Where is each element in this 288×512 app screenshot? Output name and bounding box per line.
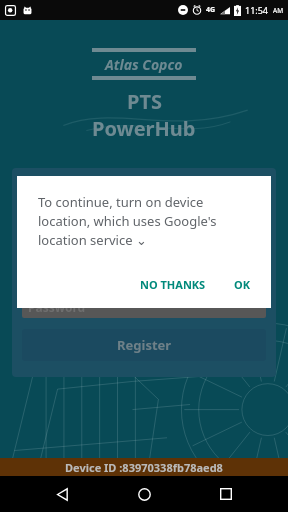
button[interactable]: Back	[42, 476, 82, 512]
staticText: 11:54	[245, 4, 269, 16]
staticText: Password	[28, 299, 86, 315]
button[interactable]: Password	[22, 296, 266, 318]
staticText: OK	[234, 277, 251, 292]
button[interactable]: OK	[226, 271, 259, 298]
staticText: Atlas Copco	[105, 55, 183, 74]
staticText: Register	[117, 336, 172, 354]
staticText: To continue, turn on device location, wh…	[38, 193, 217, 249]
button[interactable]: NO THANKS	[132, 271, 214, 298]
staticText: PowerHub	[92, 115, 196, 142]
button[interactable]: Recent apps	[206, 476, 246, 512]
staticText: NO THANKS	[140, 277, 206, 292]
button[interactable]: Home	[124, 476, 164, 512]
staticText: 4G	[206, 5, 216, 15]
button[interactable]: Register	[22, 329, 266, 361]
staticText: Device ID :83970338fb78aed8	[65, 460, 223, 475]
staticText: PTS	[127, 88, 162, 115]
staticText: AM	[273, 6, 284, 15]
